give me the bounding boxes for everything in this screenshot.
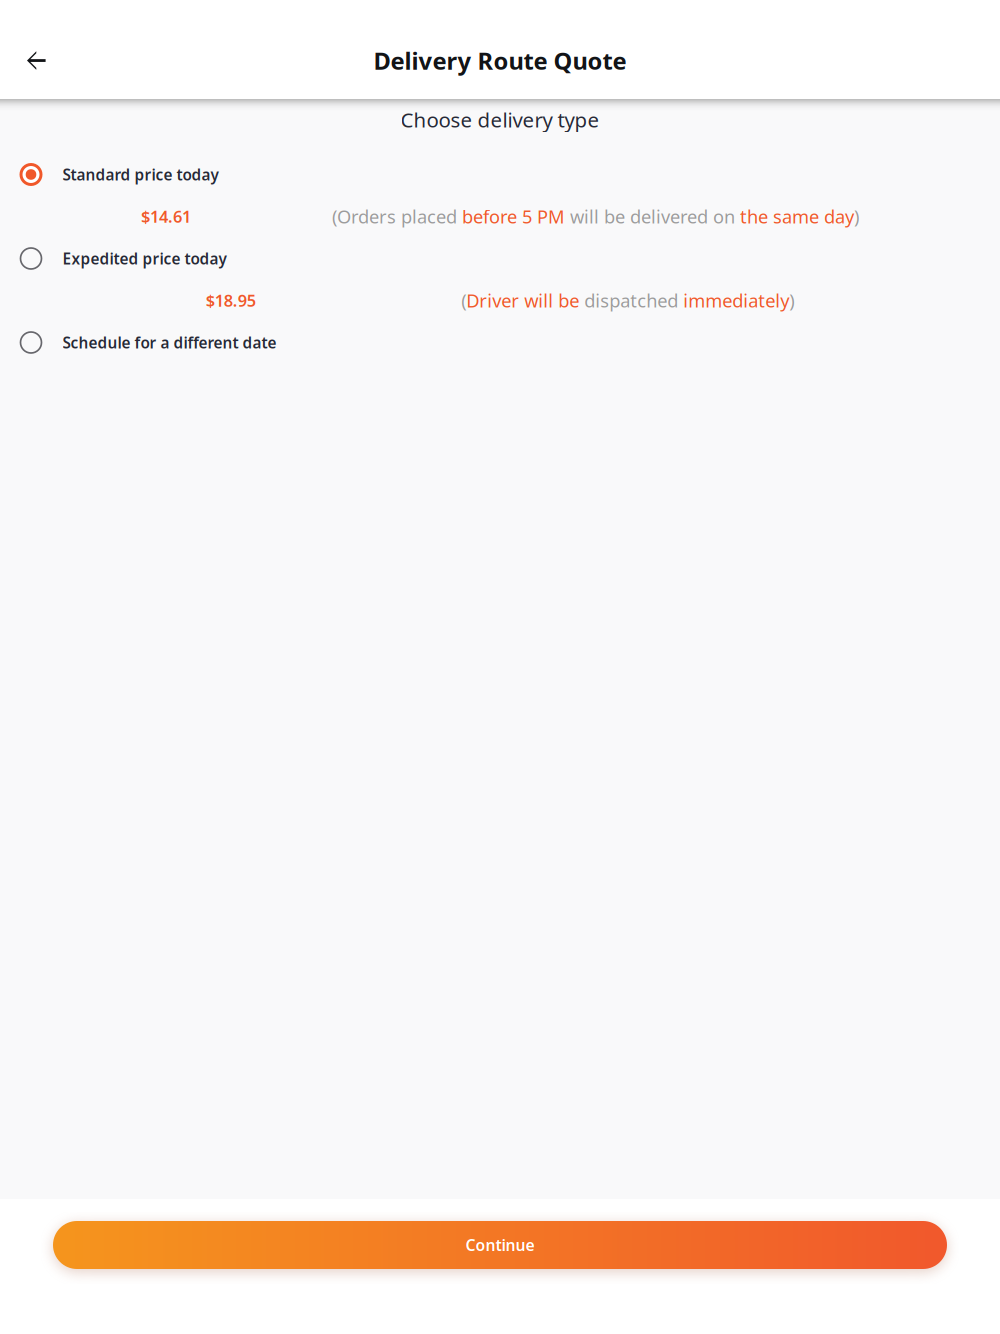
staticText: before 5 PM [462,204,565,229]
staticText: ( [461,288,466,313]
button[interactable]: Back [0,9,66,90]
staticText: immediately [683,288,789,313]
button[interactable]: Expedited price today [0,237,1000,279]
staticText: Continue [465,1234,534,1256]
staticText: dispatched [579,288,683,313]
staticText: Standard price today [62,164,218,185]
staticText: ) [854,204,859,229]
staticText: the same day [740,204,854,229]
staticText: $18.95 [206,289,256,312]
button[interactable]: Standard price today [0,153,1000,195]
staticText: will be delivered on [565,204,740,229]
staticText: $14.61 [141,205,191,228]
staticText: Expedited price today [62,248,226,269]
staticText: (Orders placed [332,204,462,229]
staticText: Driver will be [466,288,579,313]
staticText: Choose delivery type [400,106,599,133]
button[interactable]: Continue [53,1221,947,1269]
button[interactable]: Schedule for a different date [0,321,1000,363]
staticText: Schedule for a different date [62,332,276,353]
staticText: Delivery Route Quote [373,44,626,77]
staticText: ) [789,288,794,313]
